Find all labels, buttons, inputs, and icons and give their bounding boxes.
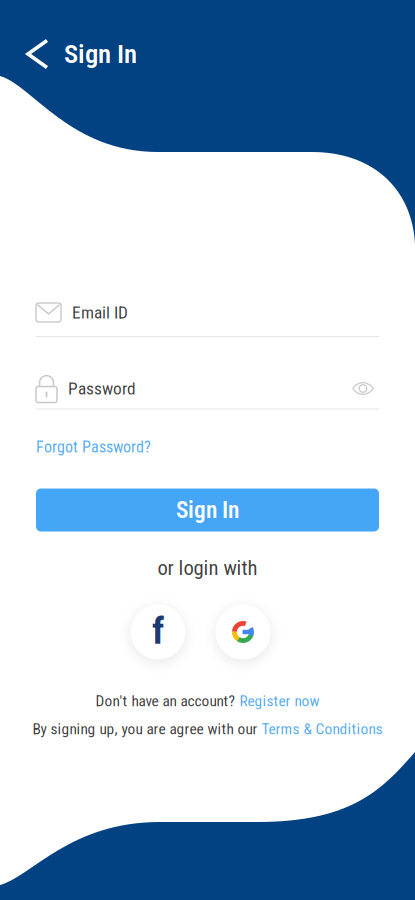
staticText: Don't have an account? [95,692,239,710]
staticText: Email ID [72,302,128,323]
staticText: By signing up, you are agree with our [32,720,261,738]
button[interactable]: Register now [239,692,319,710]
staticText: Register now [239,692,319,710]
button[interactable]: Back [17,30,58,77]
button[interactable]: Sign in with Facebook [123,597,193,667]
staticText: f [152,609,164,653]
button[interactable]: Sign In [36,488,379,531]
staticText: Forgot Password? [36,438,151,456]
button[interactable]: Forgot Password? [36,434,151,460]
staticText: Sign In [64,38,137,70]
button[interactable]: Terms & Conditions [261,720,382,738]
button[interactable]: Sign in with Google [208,597,278,667]
staticText: or login with [157,556,257,580]
staticText: Terms & Conditions [261,720,382,738]
button[interactable]: Show password [347,375,379,401]
staticText: Sign In [176,496,239,524]
staticText: Password [68,378,136,399]
